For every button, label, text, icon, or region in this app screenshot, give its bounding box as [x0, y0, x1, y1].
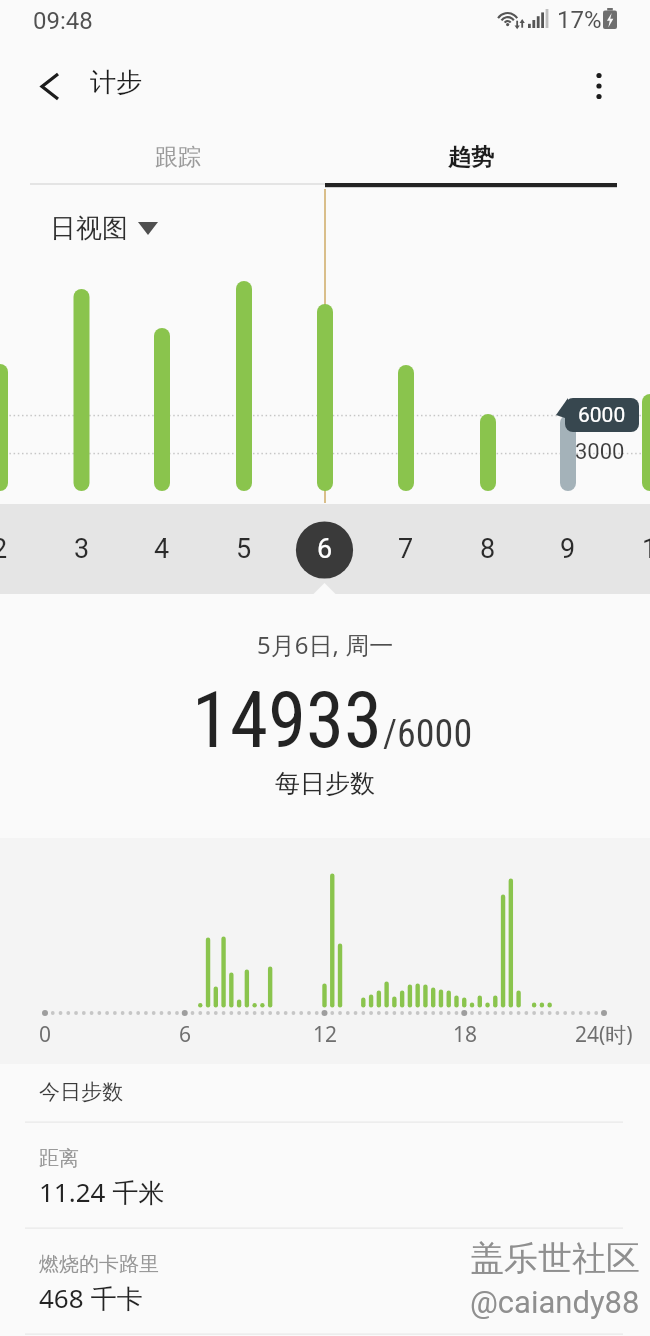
staticText: 4	[154, 533, 170, 565]
staticText: 5	[236, 533, 252, 565]
staticText: 计步	[90, 66, 142, 99]
staticText: 距离	[39, 1146, 79, 1171]
button[interactable]: 距离	[0, 1122, 650, 1228]
staticText: 1	[642, 533, 650, 565]
staticText: 3	[74, 533, 90, 565]
button[interactable]: Back	[24, 60, 76, 112]
button[interactable]: 1	[624, 523, 650, 575]
staticText: 5月6日, 周一	[257, 628, 394, 660]
staticText: 盖乐世社区	[470, 1237, 640, 1277]
staticText: 燃烧的卡路里	[39, 1252, 159, 1277]
button[interactable]: 5	[218, 523, 270, 575]
staticText: 8	[480, 533, 496, 565]
staticText: 趋势	[448, 143, 494, 172]
button[interactable]: 3	[56, 523, 108, 575]
staticText: 12	[313, 1020, 338, 1049]
button[interactable]: 9	[542, 523, 594, 575]
button[interactable]: 2	[0, 523, 26, 575]
button[interactable]: 8	[462, 523, 514, 575]
button[interactable]: 4	[136, 523, 188, 575]
staticText: 今日步数	[39, 1079, 123, 1105]
staticText: 6	[179, 1020, 192, 1049]
button[interactable]: More options	[573, 60, 625, 112]
staticText: 跟踪	[155, 143, 201, 172]
staticText: 09:48	[33, 7, 93, 35]
button[interactable]: 6	[299, 523, 351, 575]
staticText: /6000	[383, 712, 473, 757]
button[interactable]: 今日步数	[0, 1062, 650, 1122]
staticText: 6	[317, 533, 333, 565]
staticText: 9	[560, 533, 576, 565]
staticText: 468 千卡	[39, 1280, 143, 1316]
staticText: 6000	[578, 403, 626, 428]
button[interactable]: 7	[380, 523, 432, 575]
staticText: 7	[398, 533, 414, 565]
staticText: @caiandy88	[470, 1284, 640, 1320]
button[interactable]: 跟踪	[30, 126, 325, 189]
button[interactable]: 燃烧的卡路里	[0, 1228, 650, 1336]
staticText: 日视图	[50, 212, 128, 245]
staticText: 11.24 千米	[39, 1174, 165, 1210]
staticText: 3000	[575, 439, 625, 465]
staticText: 17%	[557, 6, 602, 34]
staticText: 18	[453, 1020, 478, 1049]
staticText: 24(时)	[575, 1020, 633, 1049]
staticText: 2	[0, 533, 8, 565]
staticText: 0	[39, 1020, 52, 1049]
button[interactable]: 趋势	[325, 126, 617, 189]
staticText: 14933	[192, 676, 383, 766]
button[interactable]: 日视图	[50, 212, 158, 245]
staticText: 每日步数	[275, 768, 375, 799]
